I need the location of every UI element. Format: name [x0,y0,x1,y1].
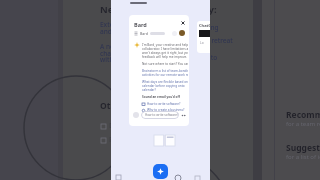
staticText: Other things to try [100,100,180,112]
staticText: What days are flexible based on my [142,80,188,84]
staticText: Plan a trip [109,135,143,145]
staticText: I'm Bard, your creative and helpful [142,43,188,47]
staticText: calendar before copying onto [142,84,185,88]
staticText: Draft an email [109,121,156,131]
staticText: How to write software? [145,113,179,117]
staticText: Lo [200,41,204,45]
staticText: Bard [134,21,147,28]
staticText: A new way to collaborate [100,42,178,51]
staticText: Recommended [286,109,320,121]
staticText: calendar? [142,88,156,92]
staticText: activities for our remote work retreat [142,73,188,77]
button[interactable]: New chat [153,164,168,179]
button[interactable]: Home [116,175,121,180]
staticText: Bard [140,31,148,36]
staticText: ChatG [199,23,210,28]
staticText: ring [206,23,219,32]
staticText: for a team retreat [286,120,320,128]
button[interactable]: Profile [195,176,200,180]
staticText: for a list of ideas [286,153,320,161]
staticText: How to write software? [147,102,181,106]
button[interactable]: How to write software? [141,111,179,119]
button[interactable]: Close [180,20,186,26]
button[interactable]: Explore [175,175,181,180]
staticText: Brainstorm a list of team-bonding [142,69,188,73]
staticText: Extensions to bring in apps [100,20,185,29]
staticText: a retreat [206,36,233,45]
staticText: s to [206,53,218,62]
staticText: Why to create a business? [147,108,185,112]
staticText: won't always get it right, but your [142,51,188,55]
staticText: with others [100,55,136,64]
staticText: and services you love [100,27,167,36]
staticText: feedback will help me improve. [142,55,188,59]
staticText: Not sure where to start? You can try: [142,62,188,66]
staticText: New things Bard can try: [100,3,217,16]
staticText: collaborator. I have limitations and [142,47,188,51]
staticText: Sound an email you'd off [142,95,180,99]
staticText: Suggest foods [286,142,320,154]
staticText: chatting with Bard and [100,49,171,58]
